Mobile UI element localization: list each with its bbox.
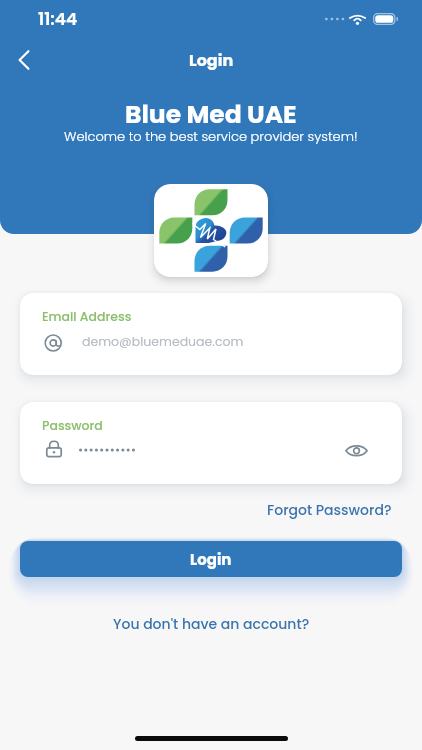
- staticText: Email Address: [42, 308, 132, 325]
- button[interactable]: Password: [20, 402, 402, 484]
- staticText: Login: [190, 549, 232, 570]
- button[interactable]: You don't have an account?: [111, 611, 312, 637]
- staticText: Blue Med UAE: [125, 97, 297, 132]
- button[interactable]: Show password: [338, 432, 374, 468]
- staticText: Welcome to the best service provider sys…: [64, 127, 358, 145]
- staticText: demo@bluemeduae.com: [82, 333, 244, 350]
- button[interactable]: Forgot Password?: [265, 497, 394, 523]
- button[interactable]: Email Address: [20, 293, 402, 375]
- staticText: Login: [189, 49, 234, 71]
- staticText: 11:44: [38, 7, 78, 31]
- staticText: Password: [42, 417, 103, 434]
- button[interactable]: Back: [6, 42, 42, 78]
- button[interactable]: Login: [20, 541, 402, 577]
